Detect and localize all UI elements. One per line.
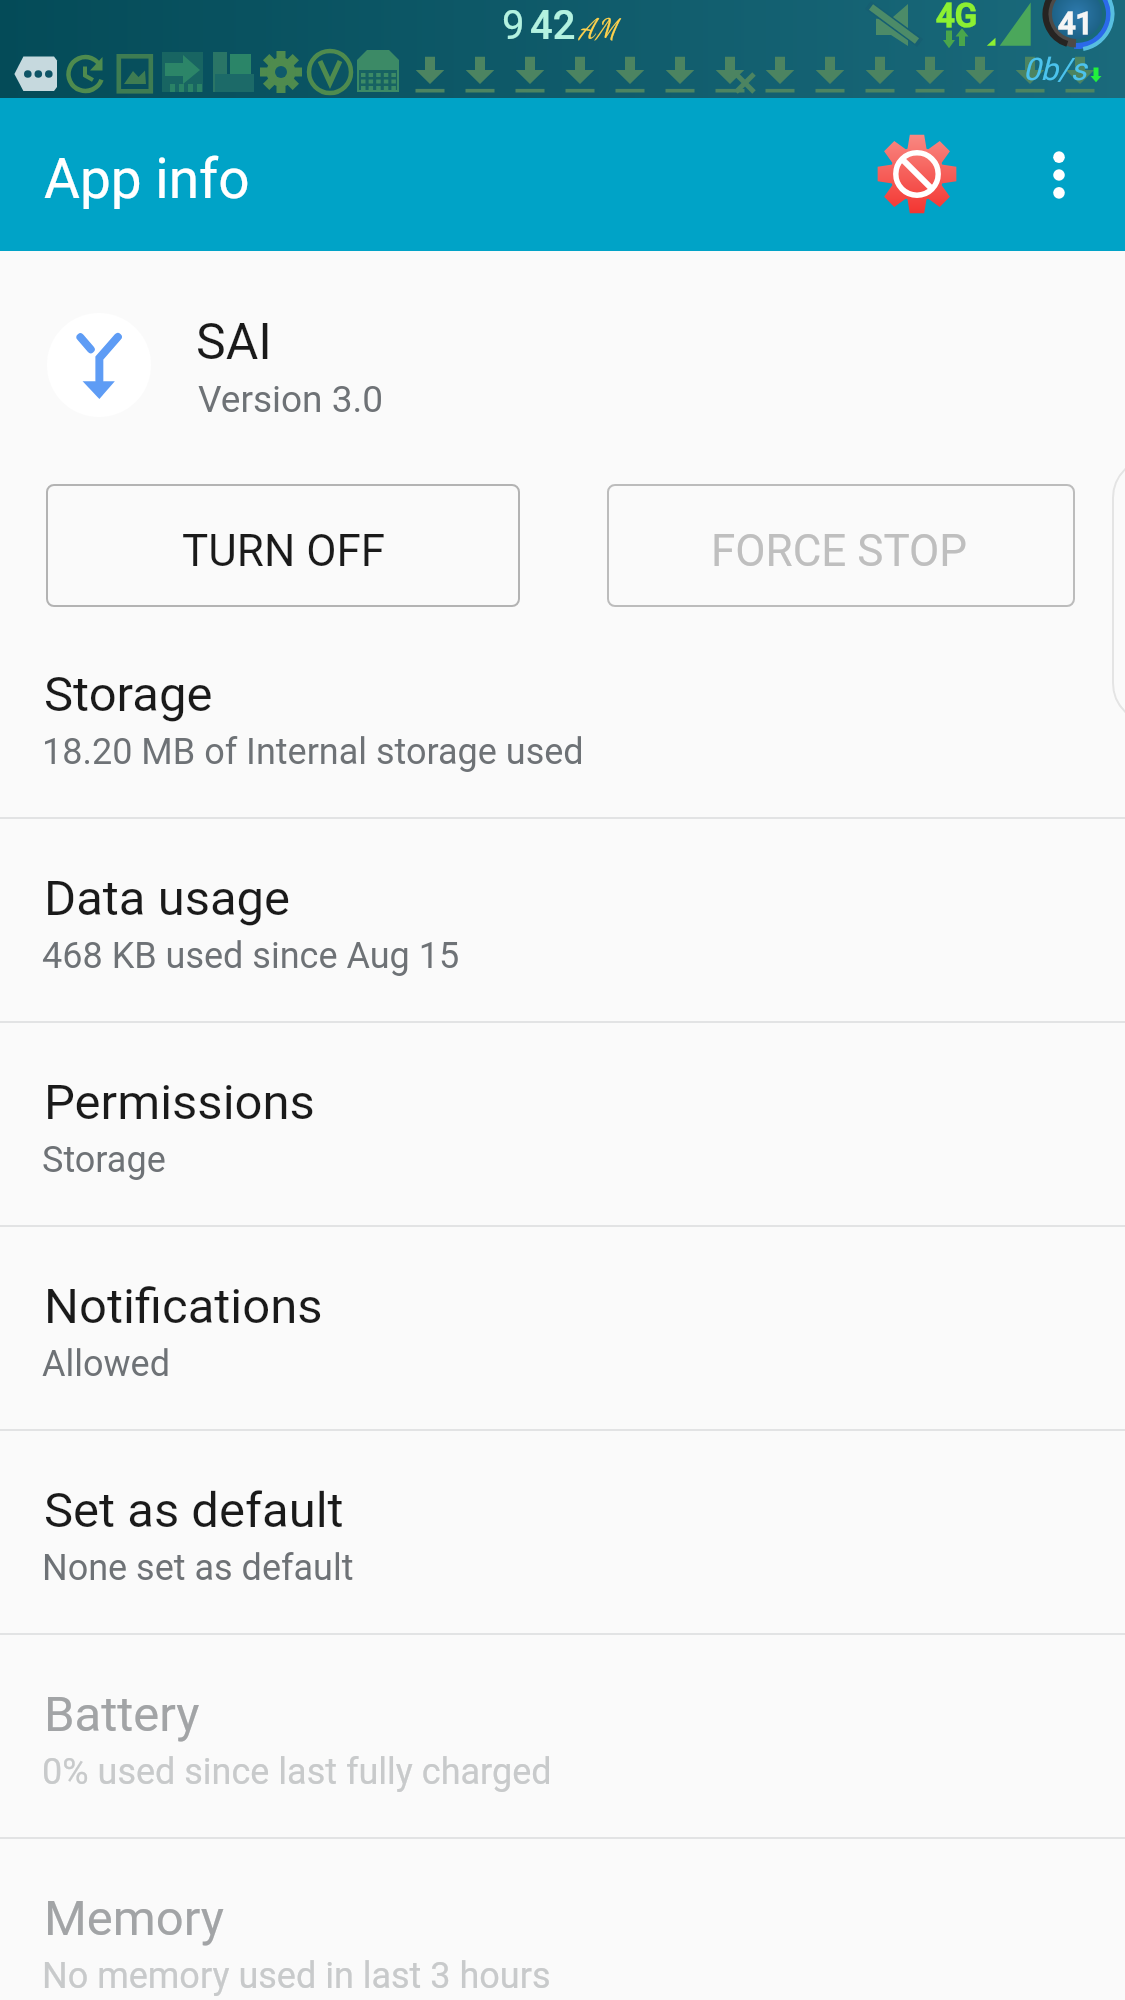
button[interactable]: TURN OFF [46, 484, 520, 607]
staticText: AM [579, 12, 617, 46]
button[interactable]: Data usage [0, 819, 1125, 1023]
button[interactable]: FORCE STOP [607, 484, 1075, 607]
staticText: Notifications [44, 1278, 323, 1335]
staticText: SAI [196, 313, 272, 372]
staticText: 0% used since last fully charged [42, 1751, 552, 1793]
staticText: Permissions [44, 1074, 315, 1131]
button[interactable]: More options [1004, 120, 1114, 230]
staticText: App info [44, 147, 250, 211]
staticText: 41 [1058, 5, 1094, 41]
button[interactable]: Notifications [0, 1227, 1125, 1431]
staticText: Set as default [44, 1482, 344, 1539]
staticText: 42 [530, 2, 576, 49]
staticText: 0b/s [1023, 51, 1087, 87]
button[interactable]: Set as default [0, 1431, 1125, 1635]
staticText: Storage [44, 666, 213, 723]
button[interactable]: Storage [0, 615, 1125, 819]
staticText: 18.20 MB of Internal storage used [42, 731, 584, 773]
staticText: 468 KB used since Aug 15 [42, 935, 460, 977]
button[interactable]: More actions [1112, 457, 1125, 724]
staticText: No memory used in last 3 hours [42, 1955, 551, 1997]
staticText: Memory [44, 1890, 224, 1947]
staticText: None set as default [42, 1547, 354, 1589]
staticText: Allowed [42, 1343, 170, 1385]
staticText: 9 [502, 2, 525, 49]
staticText: Data usage [44, 870, 291, 927]
staticText: Version 3.0 [198, 378, 384, 421]
staticText: TURN OFF [182, 525, 386, 577]
staticText: 4G [936, 0, 978, 35]
button[interactable]: Battery [0, 1635, 1125, 1839]
staticText: Storage [42, 1139, 166, 1181]
staticText: Battery [44, 1686, 200, 1743]
button[interactable]: Restricted app settings [862, 119, 972, 229]
staticText: FORCE STOP [711, 525, 968, 577]
button[interactable]: Permissions [0, 1023, 1125, 1227]
button[interactable]: Memory [0, 1839, 1125, 2000]
